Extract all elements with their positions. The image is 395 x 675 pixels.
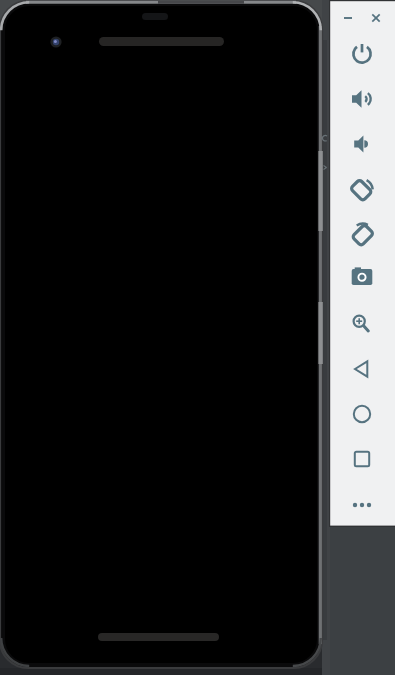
button[interactable] xyxy=(342,394,382,434)
button[interactable] xyxy=(341,79,381,119)
button[interactable] xyxy=(342,349,382,389)
button[interactable] xyxy=(342,485,382,525)
button[interactable] xyxy=(342,169,382,209)
button[interactable] xyxy=(342,34,382,74)
button[interactable] xyxy=(342,257,382,297)
button[interactable] xyxy=(356,0,395,38)
button[interactable] xyxy=(342,303,382,343)
button[interactable] xyxy=(342,214,382,254)
button[interactable] xyxy=(328,0,368,38)
button[interactable] xyxy=(342,124,382,164)
button[interactable] xyxy=(342,439,382,479)
